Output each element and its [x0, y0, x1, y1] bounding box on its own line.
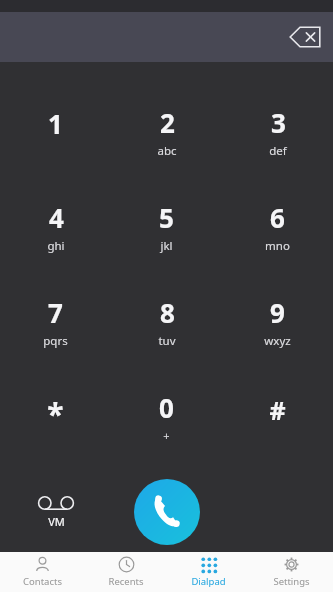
staticText: def: [269, 143, 287, 159]
button[interactable]: #: [222, 369, 333, 464]
staticText: *: [47, 393, 64, 427]
button[interactable]: VM: [0, 472, 111, 552]
staticText: mno: [265, 238, 290, 254]
staticText: ghi: [47, 238, 65, 254]
button[interactable]: 9: [222, 274, 333, 369]
staticText: jkl: [160, 238, 173, 254]
staticText: Recents: [108, 575, 144, 588]
staticText: 0: [159, 390, 174, 425]
button[interactable]: 4: [0, 179, 111, 274]
button[interactable]: 0: [111, 369, 222, 464]
staticText: 1: [48, 106, 63, 141]
staticText: Contacts: [23, 575, 62, 588]
staticText: 7: [48, 295, 63, 330]
staticText: 3: [271, 105, 286, 140]
button[interactable]: Contacts: [0, 552, 84, 592]
button[interactable]: 7: [0, 274, 111, 369]
staticText: abc: [157, 143, 177, 159]
button[interactable]: Backspace: [287, 23, 323, 51]
button[interactable]: Dialpad: [167, 552, 250, 592]
staticText: 2: [160, 105, 175, 140]
button[interactable]: 1: [0, 84, 111, 179]
button[interactable]: *: [0, 369, 111, 464]
button[interactable]: Settings: [250, 552, 333, 592]
staticText: 9: [270, 295, 285, 330]
staticText: pqrs: [43, 333, 68, 349]
button[interactable]: 2: [111, 84, 222, 179]
button[interactable]: 3: [222, 84, 333, 179]
staticText: VM: [48, 514, 65, 529]
staticText: #: [269, 393, 286, 427]
staticText: tuv: [158, 333, 176, 349]
staticText: +: [163, 428, 170, 443]
staticText: 8: [160, 295, 175, 330]
button[interactable]: 6: [222, 179, 333, 274]
staticText: Dialpad: [191, 575, 226, 588]
staticText: Settings: [273, 575, 310, 588]
staticText: 5: [159, 200, 174, 235]
staticText: 6: [270, 200, 285, 235]
button[interactable]: Call: [134, 479, 200, 545]
button[interactable]: 8: [111, 274, 222, 369]
staticText: wxyz: [264, 333, 291, 349]
staticText: 4: [49, 200, 64, 235]
button[interactable]: 5: [111, 179, 222, 274]
button[interactable]: Recents: [84, 552, 167, 592]
